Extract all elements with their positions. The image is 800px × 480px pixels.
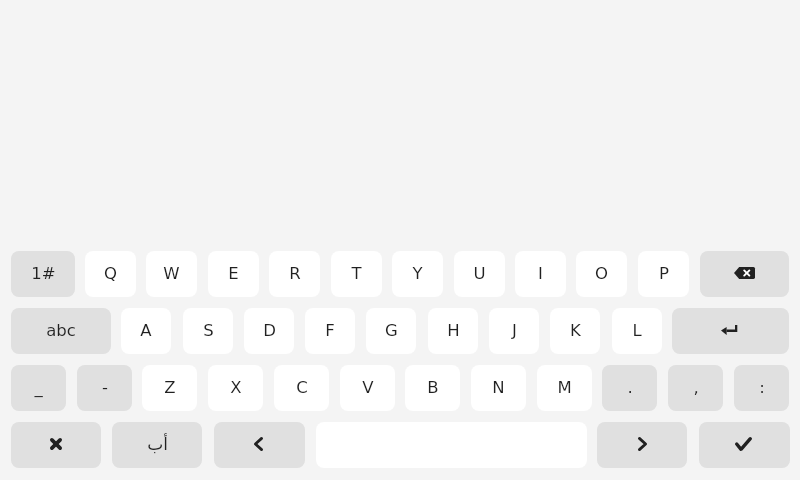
staticText: J xyxy=(512,321,517,340)
button[interactable]: أب xyxy=(112,422,202,468)
button[interactable]: Close keyboard xyxy=(11,422,101,468)
button[interactable]: U xyxy=(454,251,505,297)
button[interactable]: T xyxy=(331,251,382,297)
button[interactable]: S xyxy=(183,308,233,354)
button[interactable]: I xyxy=(515,251,566,297)
button[interactable]: Z xyxy=(142,365,197,411)
button[interactable]: C xyxy=(274,365,329,411)
staticText: T xyxy=(351,264,362,283)
button[interactable]: V xyxy=(340,365,395,411)
staticText: - xyxy=(102,378,108,397)
staticText: , xyxy=(693,378,699,397)
staticText: I xyxy=(538,264,543,283)
button[interactable]: : xyxy=(734,365,789,411)
staticText: H xyxy=(447,321,460,340)
button[interactable]: M xyxy=(537,365,592,411)
staticText: C xyxy=(296,378,308,397)
staticText: Q xyxy=(104,264,117,283)
button[interactable]: E xyxy=(208,251,259,297)
staticText: 1# xyxy=(31,264,56,283)
staticText: _ xyxy=(34,378,43,397)
staticText: S xyxy=(203,321,214,340)
button[interactable]: Enter xyxy=(672,308,789,354)
button[interactable]: H xyxy=(428,308,478,354)
button[interactable]: 1# xyxy=(11,251,75,297)
button[interactable]: Previous xyxy=(214,422,305,468)
button[interactable]: Y xyxy=(392,251,443,297)
staticText: N xyxy=(492,378,505,397)
staticText: E xyxy=(228,264,239,283)
staticText: abc xyxy=(46,321,76,340)
staticText: L xyxy=(632,321,642,340)
button[interactable]: , xyxy=(668,365,723,411)
button[interactable]: N xyxy=(471,365,526,411)
button[interactable]: _ xyxy=(11,365,66,411)
button[interactable]: . xyxy=(602,365,657,411)
staticText: X xyxy=(230,378,242,397)
staticText: D xyxy=(263,321,276,340)
staticText: Y xyxy=(412,264,423,283)
staticText: U xyxy=(473,264,486,283)
staticText: F xyxy=(325,321,335,340)
button[interactable]: Next xyxy=(597,422,687,468)
staticText: P xyxy=(659,264,669,283)
staticText: K xyxy=(570,321,581,340)
button[interactable]: J xyxy=(489,308,539,354)
button[interactable]: W xyxy=(146,251,197,297)
button[interactable]: K xyxy=(550,308,600,354)
button[interactable]: abc xyxy=(11,308,111,354)
button[interactable]: P xyxy=(638,251,689,297)
button[interactable]: A xyxy=(121,308,171,354)
button[interactable]: D xyxy=(244,308,294,354)
button[interactable]: L xyxy=(612,308,662,354)
button[interactable]: R xyxy=(269,251,320,297)
staticText: : xyxy=(759,378,765,397)
staticText: Z xyxy=(164,378,176,397)
staticText: W xyxy=(163,264,180,283)
staticText: . xyxy=(627,378,633,397)
staticText: B xyxy=(427,378,439,397)
button[interactable]: X xyxy=(208,365,263,411)
button[interactable]: F xyxy=(305,308,355,354)
staticText: V xyxy=(362,378,374,397)
staticText: أب xyxy=(147,434,168,454)
button[interactable]: Done xyxy=(699,422,790,468)
button[interactable]: Q xyxy=(85,251,136,297)
staticText: O xyxy=(595,264,608,283)
button[interactable]: G xyxy=(366,308,416,354)
button[interactable]: - xyxy=(77,365,132,411)
staticText: M xyxy=(557,378,572,397)
button[interactable]: Delete xyxy=(700,251,789,297)
staticText: G xyxy=(385,321,398,340)
staticText: R xyxy=(289,264,301,283)
button[interactable]: B xyxy=(405,365,460,411)
button[interactable]: O xyxy=(576,251,627,297)
staticText: A xyxy=(140,321,152,340)
